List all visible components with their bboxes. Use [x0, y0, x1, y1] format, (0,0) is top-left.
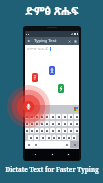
button[interactable]: Comma	[33, 141, 39, 148]
button[interactable]: Key	[35, 121, 39, 126]
button[interactable]: Symbols	[25, 141, 33, 148]
staticText: ድምፅ ጽሑፍ	[25, 3, 79, 18]
button[interactable]: Key	[50, 121, 55, 126]
staticText: Typing Test	[34, 38, 57, 44]
button[interactable]: Key	[45, 128, 49, 133]
button[interactable]: Key	[30, 114, 34, 119]
button[interactable]: Key	[62, 128, 67, 133]
button[interactable]: Back	[34, 153, 37, 156]
staticText: Dictate Text for Faster Typing	[5, 165, 99, 173]
button[interactable]: Key	[30, 121, 34, 126]
button[interactable]: Key	[40, 121, 44, 126]
button[interactable]: Key	[74, 114, 79, 119]
button[interactable]: Close	[68, 40, 71, 43]
button[interactable]: Key	[28, 135, 33, 140]
button[interactable]: Key	[68, 114, 73, 119]
button[interactable]: Key	[46, 135, 51, 140]
button[interactable]: Key	[35, 114, 39, 119]
button[interactable]: Key	[50, 114, 55, 119]
button[interactable]: Key	[52, 135, 56, 140]
button[interactable]: Enter	[70, 141, 79, 148]
button[interactable]: Google keyboard	[74, 107, 78, 111]
button[interactable]: Key	[72, 135, 76, 140]
button[interactable]: Key	[62, 121, 67, 126]
button[interactable]: Key	[74, 121, 79, 126]
button[interactable]: Key	[45, 114, 49, 119]
button[interactable]: Key	[62, 114, 67, 119]
button[interactable]: Key	[45, 121, 49, 126]
button[interactable]: Home	[51, 153, 54, 156]
button[interactable]: Period	[64, 141, 70, 148]
button[interactable]: App icon	[49, 66, 55, 75]
button[interactable]: Key	[74, 128, 79, 133]
button[interactable]: App icon	[58, 84, 64, 93]
button[interactable]: Key	[56, 121, 61, 126]
button[interactable]: Key	[25, 121, 29, 126]
button[interactable]: Key	[35, 128, 39, 133]
button[interactable]: Key	[68, 121, 73, 126]
button[interactable]: Key	[62, 135, 66, 140]
button[interactable]: Key	[68, 128, 73, 133]
button[interactable]: Key	[25, 128, 29, 133]
button[interactable]: App icon	[32, 73, 38, 82]
staticText: ድምጽ ጽሑፍ	[27, 46, 49, 52]
button[interactable]: Key	[50, 128, 55, 133]
button[interactable]: Recents	[67, 153, 70, 156]
button[interactable]: Key	[56, 114, 61, 119]
button[interactable]: Key	[67, 135, 71, 140]
button[interactable]: Delete	[74, 40, 77, 43]
button[interactable]: Back	[27, 39, 31, 43]
button[interactable]: Key	[30, 128, 34, 133]
button[interactable]: Key	[34, 135, 39, 140]
button[interactable]: Key	[40, 114, 44, 119]
button[interactable]: Key	[40, 135, 45, 140]
button[interactable]: Microphone	[7, 85, 50, 128]
button[interactable]: Key	[40, 128, 44, 133]
button[interactable]: Key	[57, 135, 61, 140]
button[interactable]: Key	[56, 128, 61, 133]
button[interactable]: Key	[25, 114, 29, 119]
